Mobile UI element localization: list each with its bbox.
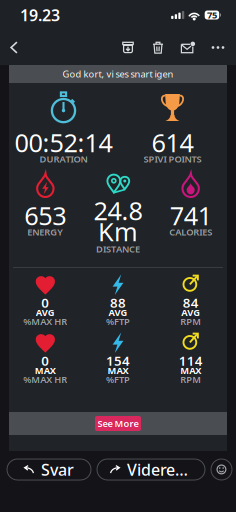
staticText: %MAX HR: [23, 315, 67, 328]
staticText: CALORIES: [169, 226, 212, 238]
staticText: God kort, vi ses snart igen: [62, 68, 173, 80]
button[interactable]: Viderese…: [97, 459, 205, 480]
staticText: 00:52:14: [14, 126, 112, 159]
staticText: MAX: [107, 364, 128, 377]
button[interactable]: Archive: [113, 30, 143, 65]
staticText: RPM: [180, 373, 201, 386]
staticText: 88: [110, 294, 126, 311]
staticText: 653: [24, 199, 66, 232]
staticText: Svar: [41, 459, 74, 480]
staticText: DISTANCE: [96, 243, 140, 255]
button[interactable]: Back: [0, 30, 28, 65]
staticText: 0: [41, 352, 49, 369]
staticText: Viderese…: [127, 459, 192, 480]
staticText: SPIVI POINTS: [143, 153, 201, 165]
button[interactable]: Delete: [143, 30, 173, 65]
staticText: 19.23: [20, 4, 60, 26]
staticText: %FTP: [106, 373, 130, 386]
staticText: ENERGY: [27, 226, 63, 238]
staticText: AVG: [181, 306, 200, 319]
staticText: 24.8: [93, 194, 142, 227]
staticText: See More: [97, 417, 138, 430]
staticText: 75: [207, 9, 217, 21]
staticText: %MAX HR: [23, 373, 67, 386]
staticText: 154: [106, 352, 130, 369]
staticText: MAX: [35, 364, 56, 377]
staticText: Km: [98, 215, 138, 248]
staticText: 84: [183, 294, 199, 311]
staticText: %FTP: [106, 315, 130, 328]
button[interactable]: See More: [95, 416, 141, 431]
staticText: 0: [41, 294, 49, 311]
button[interactable]: Add reaction: [211, 459, 232, 480]
staticText: RPM: [180, 315, 201, 328]
staticText: AVG: [36, 306, 55, 319]
button[interactable]: Mark unread: [173, 30, 203, 65]
button[interactable]: Svar: [7, 459, 91, 480]
staticText: 614: [151, 126, 193, 159]
staticText: 114: [179, 352, 203, 369]
staticText: MAX: [180, 364, 201, 377]
staticText: 741: [170, 199, 212, 232]
staticText: AVG: [108, 306, 127, 319]
button[interactable]: More options: [203, 30, 233, 65]
staticText: DURATION: [39, 153, 87, 165]
